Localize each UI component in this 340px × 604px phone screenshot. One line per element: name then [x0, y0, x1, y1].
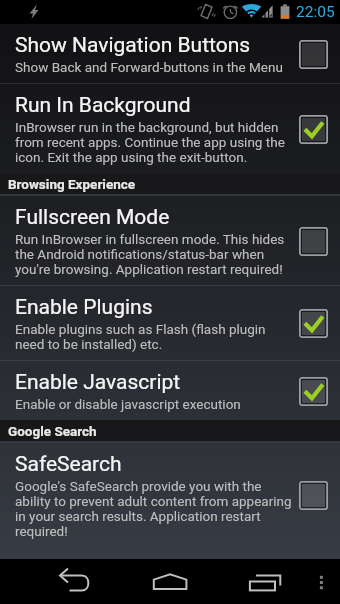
button[interactable]: Run In Background — [0, 84, 340, 173]
button[interactable]: Toggle setting — [298, 226, 328, 256]
staticText: Enable or disable javascript execution — [15, 397, 241, 412]
staticText: Show Back and Forward-buttons in the Men… — [15, 60, 283, 75]
staticText: SafeSearch — [15, 451, 122, 476]
button[interactable]: Home — [122, 559, 217, 604]
staticText: Run InBrowser in fullscreen mode. This h… — [15, 232, 292, 277]
staticText: InBrowser run in the background, but hid… — [15, 120, 292, 165]
staticText: Google's SafeSearch provide you with the… — [15, 479, 292, 539]
staticText: Google Search — [8, 423, 97, 439]
staticText: Run In Background — [15, 92, 191, 117]
button[interactable]: More options — [305, 559, 340, 604]
button[interactable]: Toggle setting — [298, 480, 328, 510]
staticText: Enable Javascript — [15, 369, 181, 394]
button[interactable]: SafeSearch — [0, 443, 340, 547]
button[interactable]: Back — [0, 559, 122, 604]
button[interactable]: Enable Plugins — [0, 286, 340, 360]
staticText: Browsing Experience — [8, 176, 136, 192]
button[interactable]: Toggle setting — [298, 308, 328, 338]
staticText: Enable plugins such as Flash (flash plug… — [15, 322, 292, 352]
button[interactable]: Fullscreen Mode — [0, 196, 340, 285]
button[interactable]: Recent apps — [217, 559, 305, 604]
button[interactable]: Toggle setting — [298, 39, 328, 69]
button[interactable]: Toggle setting — [298, 114, 328, 144]
staticText: Fullscreen Mode — [15, 204, 170, 229]
button[interactable]: Show Navigation Buttons — [0, 24, 340, 83]
staticText: Show Navigation Buttons — [15, 32, 251, 57]
staticText: 22:05 — [296, 3, 335, 21]
button[interactable]: Toggle setting — [298, 376, 328, 406]
staticText: Enable Plugins — [15, 294, 153, 319]
button[interactable]: Enable Javascript — [0, 361, 340, 420]
